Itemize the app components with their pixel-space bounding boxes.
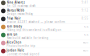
staticText: Photos from the trip (7, 44, 36, 48)
staticText: Mon (82, 49, 88, 52)
staticText: Marcus Webb (7, 9, 25, 12)
button[interactable]: Nina Alvarez (0, 0, 90, 8)
staticText: Tom Brady (7, 25, 22, 28)
staticText: Hiking trip this weekend is officially o… (7, 28, 62, 32)
button[interactable]: Sara Lin (0, 32, 90, 40)
button[interactable]: Jordan Hale (0, 48, 90, 56)
button[interactable]: Marcus Webb (0, 8, 90, 16)
staticText: Design review Friday (7, 12, 33, 16)
staticText: Invoice #2281 attached — please confirm (7, 20, 65, 24)
staticText: Re: Q3 roadmap draft (7, 4, 36, 8)
button[interactable]: Alex Chen (0, 40, 90, 48)
staticText: Priya Nair (7, 17, 21, 20)
staticText: New build available for testing (7, 36, 49, 40)
button[interactable]: Tom Brady (0, 24, 90, 32)
staticText: Contract renewal signed (7, 52, 40, 56)
staticText: 9:41 (81, 1, 88, 4)
staticText: Yest (83, 33, 88, 36)
staticText: 8:55 (81, 17, 88, 20)
button[interactable]: Priya Nair (0, 16, 90, 24)
staticText: 9:12 (81, 9, 88, 12)
staticText: Sara Lin (7, 33, 18, 36)
staticText: Mon (82, 41, 88, 44)
staticText: Yest (83, 25, 88, 28)
staticText: Alex Chen (7, 41, 22, 44)
staticText: Jordan Hale (7, 49, 25, 52)
staticText: Nina Alvarez (7, 1, 25, 4)
